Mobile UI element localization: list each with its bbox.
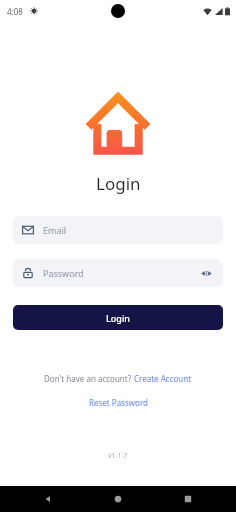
staticText: Reset Password <box>89 397 148 408</box>
staticText: 4:08 <box>7 6 23 17</box>
button[interactable]: Email <box>13 216 223 244</box>
button[interactable]: Login <box>13 305 223 330</box>
button[interactable]: Show password <box>198 265 214 281</box>
button[interactable]: Create Account <box>134 373 192 384</box>
button[interactable]: Password <box>13 259 223 287</box>
staticText: v1.1.7 <box>108 451 128 461</box>
button[interactable]: Reset Password <box>83 395 154 410</box>
staticText: Create Account <box>134 373 192 384</box>
staticText: Login <box>106 312 130 324</box>
button[interactable]: Home <box>108 489 128 509</box>
staticText: Email <box>43 224 67 236</box>
staticText: Don't have an account? <box>44 373 134 384</box>
button[interactable]: Back <box>38 489 58 509</box>
staticText: Password <box>43 267 84 279</box>
button[interactable]: Recent apps <box>178 489 198 509</box>
staticText: Login <box>96 172 141 195</box>
